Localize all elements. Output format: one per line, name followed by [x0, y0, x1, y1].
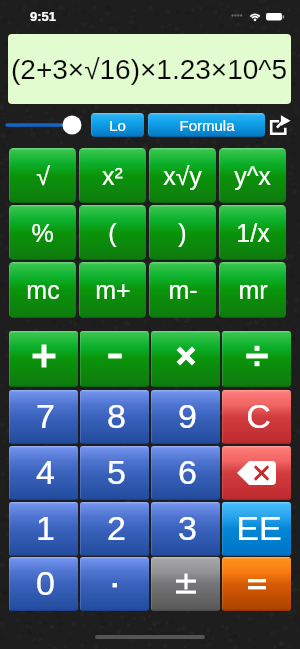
- staticText: (: [108, 219, 117, 247]
- button[interactable]: 3: [151, 502, 220, 556]
- button[interactable]: 0: [9, 557, 78, 611]
- staticText: 1/x: [236, 219, 270, 247]
- button[interactable]: times: [151, 331, 220, 387]
- button[interactable]: 4: [9, 446, 78, 500]
- staticText: √: [36, 162, 50, 190]
- staticText: mr: [238, 276, 268, 304]
- button[interactable]: Decimal point: [80, 557, 149, 611]
- button[interactable]: 2: [80, 502, 149, 556]
- staticText: 9:51: [30, 9, 57, 24]
- staticText: 0: [36, 564, 55, 602]
- button[interactable]: Formula: [148, 113, 265, 137]
- button[interactable]: ): [149, 205, 216, 260]
- staticText: x²: [102, 162, 123, 190]
- button[interactable]: EE: [222, 502, 291, 556]
- staticText: 8: [107, 397, 126, 435]
- staticText: y^x: [234, 162, 271, 190]
- button[interactable]: √: [9, 148, 76, 203]
- button[interactable]: 5: [80, 446, 149, 500]
- staticText: C: [246, 397, 271, 435]
- button[interactable]: 8: [80, 390, 149, 444]
- button[interactable]: Lo: [91, 113, 144, 137]
- button[interactable]: 6: [151, 446, 220, 500]
- button[interactable]: Brightness slider: [0, 113, 88, 137]
- button[interactable]: C: [222, 390, 291, 444]
- staticText: 4: [36, 453, 55, 491]
- button[interactable]: 1: [9, 502, 78, 556]
- staticText: Lo: [109, 117, 126, 134]
- staticText: EE: [236, 509, 282, 547]
- button[interactable]: mc: [9, 262, 76, 318]
- button[interactable]: 7: [9, 390, 78, 444]
- button[interactable]: x²: [79, 148, 146, 203]
- staticText: mc: [26, 276, 60, 304]
- button[interactable]: Equals: [222, 557, 291, 611]
- staticText: 2: [107, 509, 126, 547]
- button[interactable]: Share: [267, 112, 292, 137]
- button[interactable]: m-: [149, 262, 216, 318]
- button[interactable]: 9: [151, 390, 220, 444]
- staticText: Formula: [179, 117, 235, 134]
- button[interactable]: minus: [80, 331, 149, 387]
- staticText: x√y: [163, 162, 202, 190]
- staticText: 5: [107, 453, 126, 491]
- button[interactable]: mr: [219, 262, 286, 318]
- button[interactable]: %: [9, 205, 76, 260]
- button[interactable]: 1/x: [219, 205, 286, 260]
- staticText: ): [178, 219, 187, 247]
- staticText: 9: [178, 397, 197, 435]
- button[interactable]: y^x: [219, 148, 286, 203]
- staticText: 6: [178, 453, 197, 491]
- button[interactable]: plus: [9, 331, 78, 387]
- staticText: 3: [178, 509, 197, 547]
- staticText: (2+3×√16)×1.23×10^5: [11, 54, 288, 85]
- button[interactable]: x√y: [149, 148, 216, 203]
- staticText: %: [31, 219, 54, 247]
- staticText: m-: [168, 276, 198, 304]
- staticText: m+: [95, 276, 131, 304]
- button[interactable]: Plus minus: [151, 557, 220, 611]
- button[interactable]: m+: [79, 262, 146, 318]
- staticText: 7: [36, 397, 55, 435]
- button[interactable]: (: [79, 205, 146, 260]
- button[interactable]: Delete: [222, 446, 291, 500]
- button[interactable]: div: [222, 331, 291, 387]
- staticText: 1: [36, 509, 55, 547]
